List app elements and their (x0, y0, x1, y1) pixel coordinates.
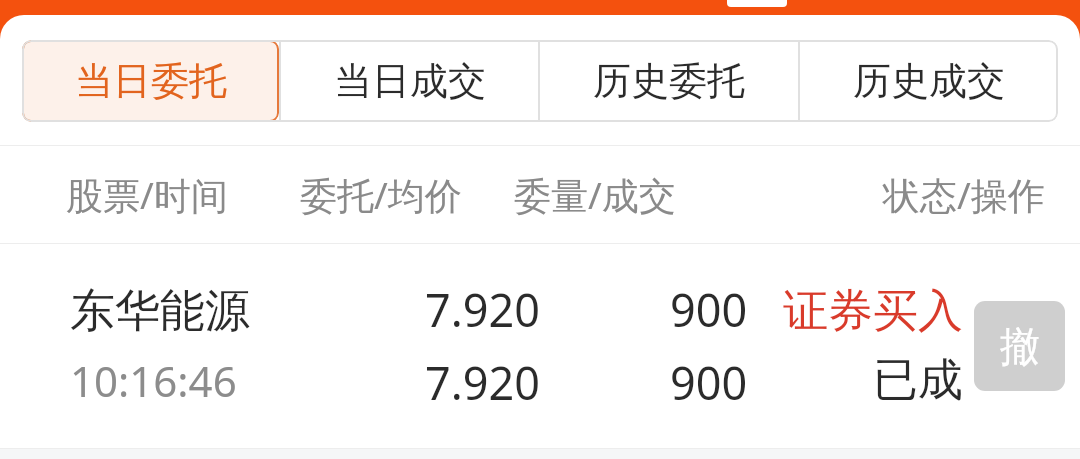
button[interactable]: 撤单 (974, 301, 1065, 391)
staticText: 证券买入 (783, 283, 963, 340)
button[interactable]: 东华能源 (0, 244, 1080, 448)
staticText: 委量/成交 (514, 169, 676, 220)
staticText: 东华能源 (70, 283, 250, 340)
staticText: 历史成交 (853, 57, 1005, 105)
button[interactable]: 历史成交 (800, 40, 1058, 122)
staticText: 股票/时间 (66, 169, 228, 220)
staticText: 7.920 (424, 352, 540, 413)
button[interactable]: 当日委托 (22, 40, 279, 122)
staticText: 900 (670, 352, 748, 413)
button[interactable]: 当日成交 (281, 40, 538, 122)
staticText: 当日委托 (75, 57, 227, 105)
staticText: 7.920 (424, 279, 540, 340)
staticText: 10:16:46 (70, 352, 237, 409)
staticText: 委托/均价 (300, 169, 462, 220)
staticText: 撤 (1000, 321, 1040, 371)
staticText: 状态/操作 (883, 169, 1045, 220)
staticText: 历史委托 (593, 57, 745, 105)
staticText: 已成 (873, 352, 963, 409)
staticText: 当日成交 (334, 57, 486, 105)
staticText: 900 (670, 279, 748, 340)
button[interactable]: 历史委托 (540, 40, 798, 122)
